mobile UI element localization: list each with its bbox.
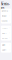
staticText: Safari [2, 49, 6, 51]
button[interactable]: Safari [1, 48, 11, 53]
button[interactable]: Storage [1, 36, 11, 41]
staticText: Privacy [2, 27, 8, 29]
staticText: 9:41 [1, 1, 4, 3]
staticText: Wallet [2, 44, 5, 46]
button[interactable]: Sounds [1, 19, 11, 24]
button[interactable]: Display [1, 14, 11, 19]
button[interactable]: General [1, 9, 11, 14]
staticText: General [2, 10, 8, 12]
staticText: Storage [2, 37, 8, 39]
button[interactable]: Battery [1, 31, 11, 36]
button[interactable]: Wallet [1, 43, 11, 48]
staticText: Display [2, 15, 7, 17]
staticText: Settings [1, 3, 10, 10]
staticText: Sounds [2, 20, 8, 22]
staticText: Battery [2, 32, 7, 34]
button[interactable]: Privacy [1, 26, 11, 31]
